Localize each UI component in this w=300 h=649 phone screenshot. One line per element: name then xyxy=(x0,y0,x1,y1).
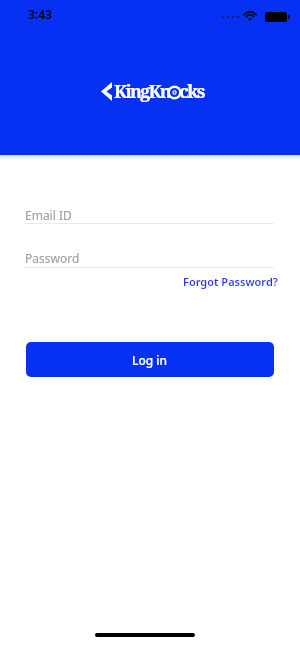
button[interactable]: Email ID xyxy=(25,203,274,224)
staticText: Forgot Password? xyxy=(183,274,278,289)
button[interactable]: Log in xyxy=(26,342,274,377)
staticText: KingKnocks xyxy=(114,79,204,104)
staticText: Email ID xyxy=(25,207,72,223)
staticText: 3:43 xyxy=(28,6,52,22)
staticText: Password xyxy=(25,250,80,266)
button[interactable]: Password xyxy=(25,246,274,268)
button[interactable]: Forgot Password? xyxy=(183,274,278,289)
staticText: Log in xyxy=(132,352,168,368)
